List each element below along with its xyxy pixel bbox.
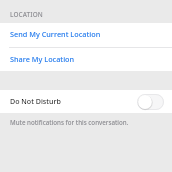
staticText: Do Not Disturb bbox=[10, 96, 61, 106]
staticText: LOCATION bbox=[10, 10, 43, 19]
staticText: Mute notifications for this conversation… bbox=[10, 118, 129, 126]
staticText: Share My Location bbox=[10, 54, 75, 64]
staticText: Send My Current Location bbox=[10, 29, 101, 39]
button[interactable]: Send My Current Location bbox=[0, 23, 172, 47]
button[interactable]: Share My Location bbox=[0, 47, 172, 71]
button[interactable]: Do Not Disturb toggle bbox=[137, 94, 164, 110]
button[interactable]: Do Not Disturb bbox=[0, 90, 172, 113]
